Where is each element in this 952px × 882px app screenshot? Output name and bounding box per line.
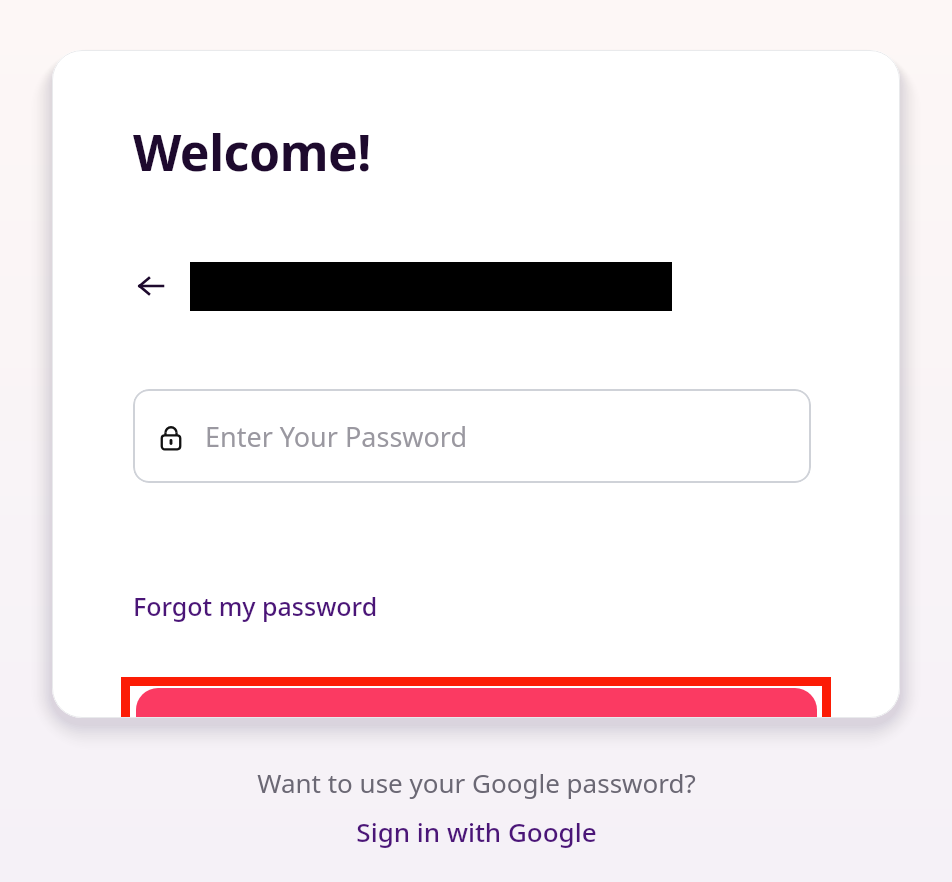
button[interactable]: Back [133,268,169,304]
button[interactable]: Sign in [136,688,817,718]
button[interactable]: Sign in with Google [352,812,601,851]
staticText: Sign in with Google [356,814,597,849]
staticText: Want to use your Google password? [257,765,696,800]
staticText: Welcome! [133,118,371,186]
button[interactable]: Enter Your Password [133,389,811,483]
button[interactable]: Forgot my password [133,587,378,625]
staticText: Forgot my password [133,589,378,623]
staticText: Enter Your Password [205,418,468,455]
